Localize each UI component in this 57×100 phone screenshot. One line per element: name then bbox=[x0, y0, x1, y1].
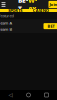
button[interactable]: Home bbox=[23, 90, 33, 100]
staticText: ◁ bbox=[8, 92, 12, 98]
button[interactable]: Recents bbox=[41, 90, 51, 100]
button[interactable]: Menu bbox=[0, 0, 8, 9]
staticText: Team B bbox=[0, 27, 12, 32]
staticText: WAY bbox=[28, 0, 37, 13]
staticText: BET bbox=[18, 0, 28, 13]
button[interactable]: Back bbox=[5, 90, 15, 100]
staticText: Team A bbox=[0, 20, 12, 26]
staticText: Featured bbox=[0, 13, 13, 18]
staticText: BET bbox=[47, 23, 54, 29]
staticText: CASINO bbox=[33, 8, 49, 13]
button[interactable]: BET bbox=[43, 23, 57, 29]
staticText: Join bbox=[49, 2, 57, 7]
staticText: SPORTS bbox=[8, 8, 22, 13]
button[interactable]: Join bbox=[48, 1, 57, 8]
